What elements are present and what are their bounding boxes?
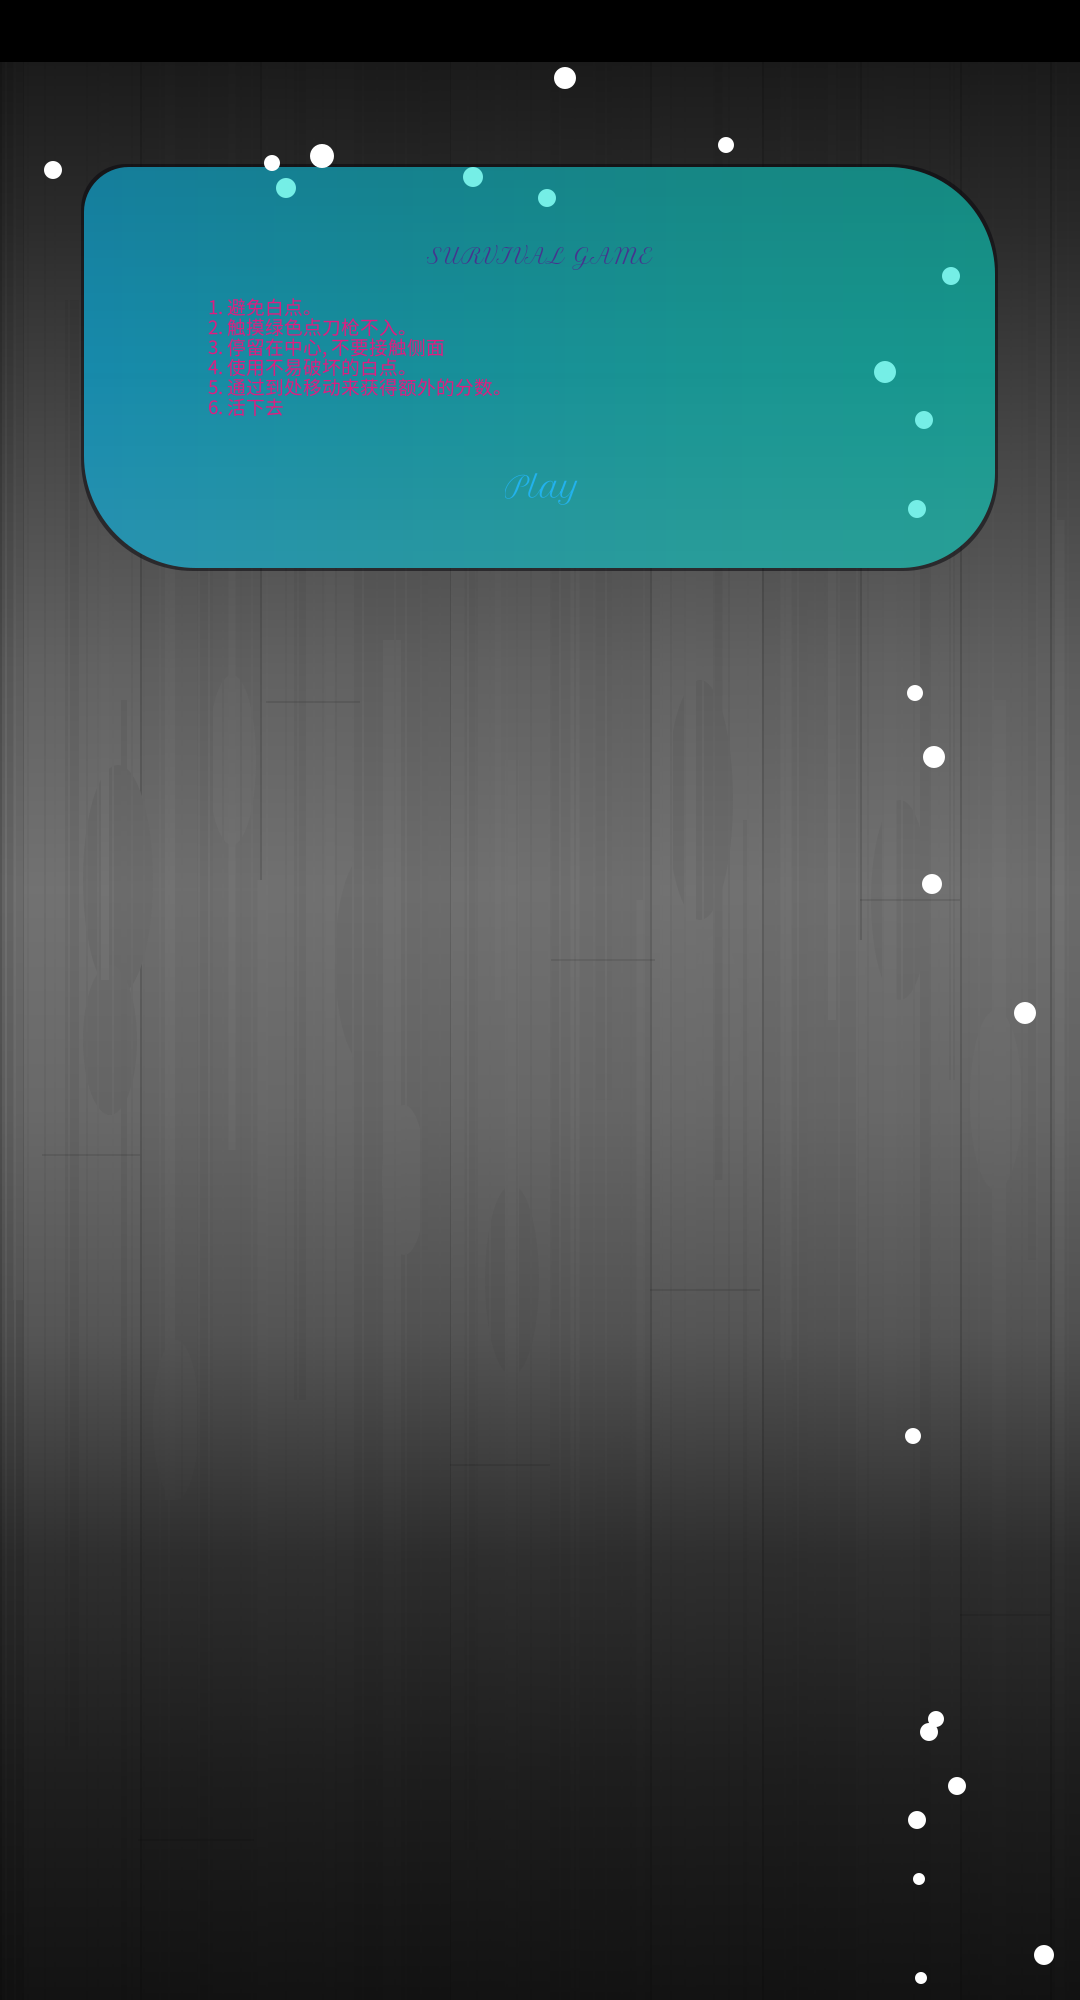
staticText: 3. 停留在中心, 不要接触侧面 [208, 332, 445, 359]
staticText: 5. 通过到处移动来获得额外的分数。 [208, 372, 512, 399]
staticText: 6. 活下去 [208, 392, 284, 419]
staticText: 2. 触摸绿色点刀枪不入。 [208, 312, 417, 339]
button[interactable]: Play [464, 451, 620, 523]
staticText: Play [504, 469, 580, 505]
staticText: SURVIVAL GAME [426, 242, 652, 270]
staticText: 4. 使用不易破坏的白点。 [208, 352, 417, 379]
staticText: 1. 避免白点。 [208, 292, 322, 319]
